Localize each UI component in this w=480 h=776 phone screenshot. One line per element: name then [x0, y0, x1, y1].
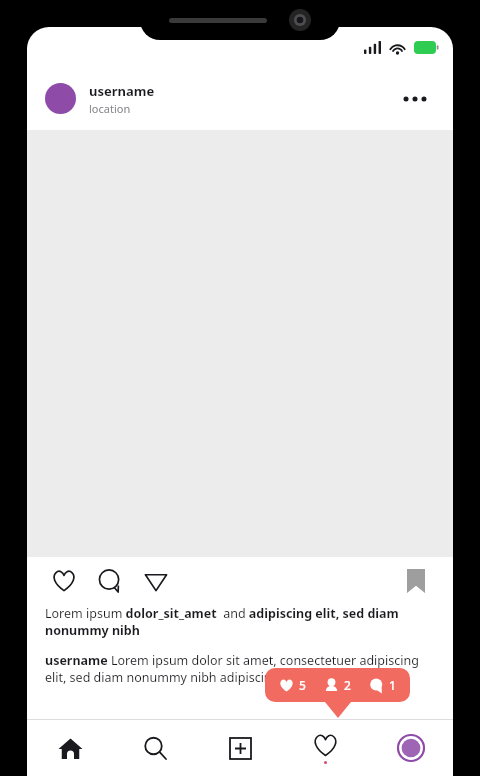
- staticText: 2: [344, 677, 351, 693]
- staticText: Lorem ipsum dolor_sit_amet and adipiscin…: [45, 605, 435, 639]
- staticText: username Lorem ipsum dolor sit amet, con…: [45, 652, 435, 686]
- button[interactable]: Profile: [368, 720, 453, 776]
- staticText: 5: [299, 677, 306, 693]
- button[interactable]: Activity: [283, 720, 368, 776]
- button[interactable]: Home: [27, 720, 113, 776]
- button[interactable]: username: [89, 82, 395, 116]
- button[interactable]: New post: [198, 720, 283, 776]
- button[interactable]: Search: [113, 720, 198, 776]
- button[interactable]: Save: [397, 562, 435, 600]
- button[interactable]: 5: [265, 668, 410, 702]
- staticText: username: [89, 82, 155, 100]
- button[interactable]: Share: [137, 562, 175, 600]
- button[interactable]: Like: [45, 562, 83, 600]
- button[interactable]: [45, 83, 76, 114]
- staticText: location: [89, 101, 131, 116]
- button[interactable]: Comment: [91, 562, 129, 600]
- button[interactable]: More options: [395, 79, 435, 119]
- staticText: 1: [389, 677, 396, 693]
